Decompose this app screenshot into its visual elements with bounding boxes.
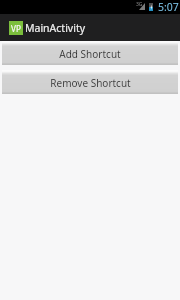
- other: Mobile signal strength: [139, 3, 145, 10]
- button[interactable]: Add Shortcut: [2, 41, 178, 65]
- button[interactable]: App icon: [0, 14, 92, 41]
- staticText: VP: [11, 23, 21, 34]
- staticText: Remove Shortcut: [50, 76, 131, 90]
- other: Battery charging: [149, 3, 153, 11]
- staticText: 3G: [136, 1, 143, 8]
- staticText: MainActivity: [25, 21, 86, 35]
- staticText: 5:07: [158, 0, 179, 14]
- staticText: Add Shortcut: [59, 47, 121, 61]
- other: App icon: [9, 21, 23, 35]
- button[interactable]: Remove Shortcut: [2, 70, 178, 94]
